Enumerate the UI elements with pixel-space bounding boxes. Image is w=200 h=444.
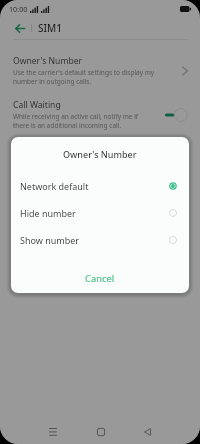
staticText: Hide number xyxy=(20,207,76,219)
button[interactable]: Network default xyxy=(11,172,189,199)
button[interactable]: Show number xyxy=(11,226,189,253)
staticText: Network default xyxy=(20,180,89,192)
staticText: 10:00 xyxy=(9,4,28,14)
staticText: SIM1 xyxy=(38,21,62,35)
staticText: While receiving an active call, notify m… xyxy=(13,112,155,130)
button[interactable]: Back xyxy=(132,421,163,443)
staticText: Cancel xyxy=(85,272,115,285)
staticText: Show number xyxy=(20,234,80,246)
button[interactable]: Back xyxy=(0,17,31,39)
button[interactable]: Owner's Number xyxy=(0,40,200,94)
button[interactable]: Recent apps xyxy=(37,421,68,443)
staticText: Owner's Number xyxy=(13,55,83,67)
staticText: Owner's Number xyxy=(63,148,137,160)
button[interactable]: Hide number xyxy=(11,199,189,226)
button[interactable]: Cancel xyxy=(11,263,189,293)
staticText: Use the carrier's default settings to di… xyxy=(13,68,155,86)
button[interactable]: Home xyxy=(85,421,116,443)
button[interactable]: Call Waiting xyxy=(0,94,200,139)
staticText: Call Waiting xyxy=(13,99,61,111)
